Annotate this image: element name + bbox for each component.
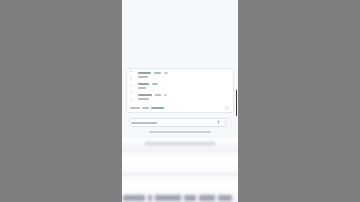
button[interactable]: Send [224,120,229,125]
button[interactable]: Copy [225,106,229,110]
button[interactable]: Voice input [216,120,221,125]
button[interactable] [136,71,229,79]
button[interactable]: Copy [126,68,234,113]
button[interactable] [136,82,229,90]
button[interactable]: Copy [130,105,229,111]
button[interactable] [136,93,229,101]
button[interactable]: Voice input [128,118,232,127]
